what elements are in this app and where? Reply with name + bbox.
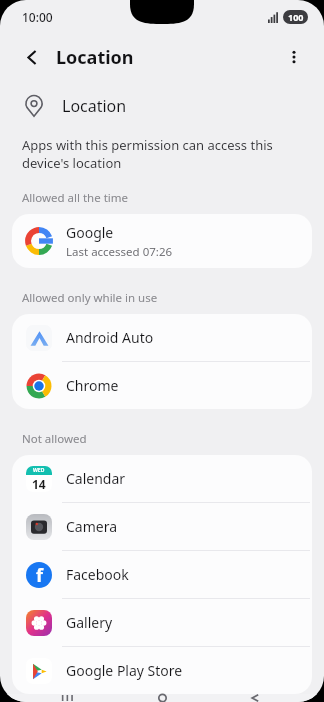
staticText: f (36, 563, 43, 588)
button[interactable]: Gallery (12, 599, 312, 647)
staticText: Last accessed 07:26 (66, 244, 173, 260)
button[interactable]: Back (231, 694, 279, 702)
staticText: Google Play Store (66, 661, 183, 680)
button[interactable]: Recents (45, 694, 93, 702)
staticText: 10:00 (22, 9, 53, 25)
button[interactable]: Home (138, 694, 186, 702)
staticText: Not allowed (22, 431, 87, 447)
staticText: Chrome (66, 376, 119, 395)
button[interactable]: Android Auto (12, 314, 312, 362)
staticText: 14 (32, 476, 46, 492)
staticText: Camera (66, 517, 118, 536)
staticText: WED (33, 467, 45, 474)
button[interactable]: Google (12, 214, 312, 268)
button[interactable]: f (12, 551, 312, 599)
button[interactable]: WED (12, 455, 312, 503)
staticText: Allowed all the time (22, 190, 129, 206)
button[interactable]: Google Play Store (12, 647, 312, 694)
staticText: Allowed only while in use (22, 290, 158, 306)
staticText: Location (56, 45, 134, 70)
staticText: Gallery (66, 613, 113, 632)
button[interactable]: Chrome (12, 362, 312, 409)
button[interactable]: Camera (12, 503, 312, 551)
button[interactable]: More options (276, 39, 312, 75)
staticText: Google (66, 223, 114, 242)
staticText: 100 (288, 11, 304, 23)
staticText: Android Auto (66, 328, 154, 347)
staticText: Calendar (66, 469, 126, 488)
staticText: Location (62, 95, 127, 117)
staticText: Apps with this permission can access thi… (22, 136, 298, 172)
button[interactable]: Back (14, 39, 50, 75)
staticText: Facebook (66, 565, 129, 584)
